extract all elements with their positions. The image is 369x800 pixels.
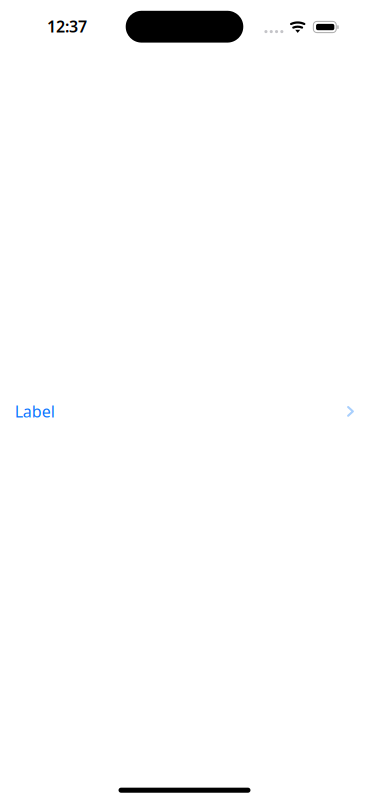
staticText: Label bbox=[15, 401, 55, 422]
staticText: 12:37 bbox=[47, 16, 87, 37]
button[interactable]: Label bbox=[0, 389, 369, 433]
